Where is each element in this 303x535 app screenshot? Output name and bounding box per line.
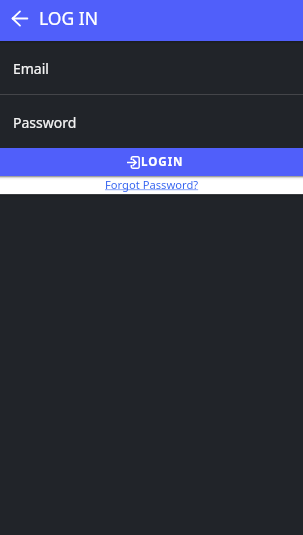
staticText: Password [13, 113, 77, 132]
button[interactable]: Back [0, 0, 40, 39]
button[interactable]: LOGIN [0, 148, 303, 176]
staticText: LOGIN [141, 154, 184, 170]
button[interactable]: Password [0, 95, 303, 148]
button[interactable]: Email [0, 41, 303, 94]
button[interactable]: Forgot Password? [105, 177, 199, 192]
staticText: LOG IN [39, 6, 99, 30]
staticText: Email [13, 59, 49, 78]
